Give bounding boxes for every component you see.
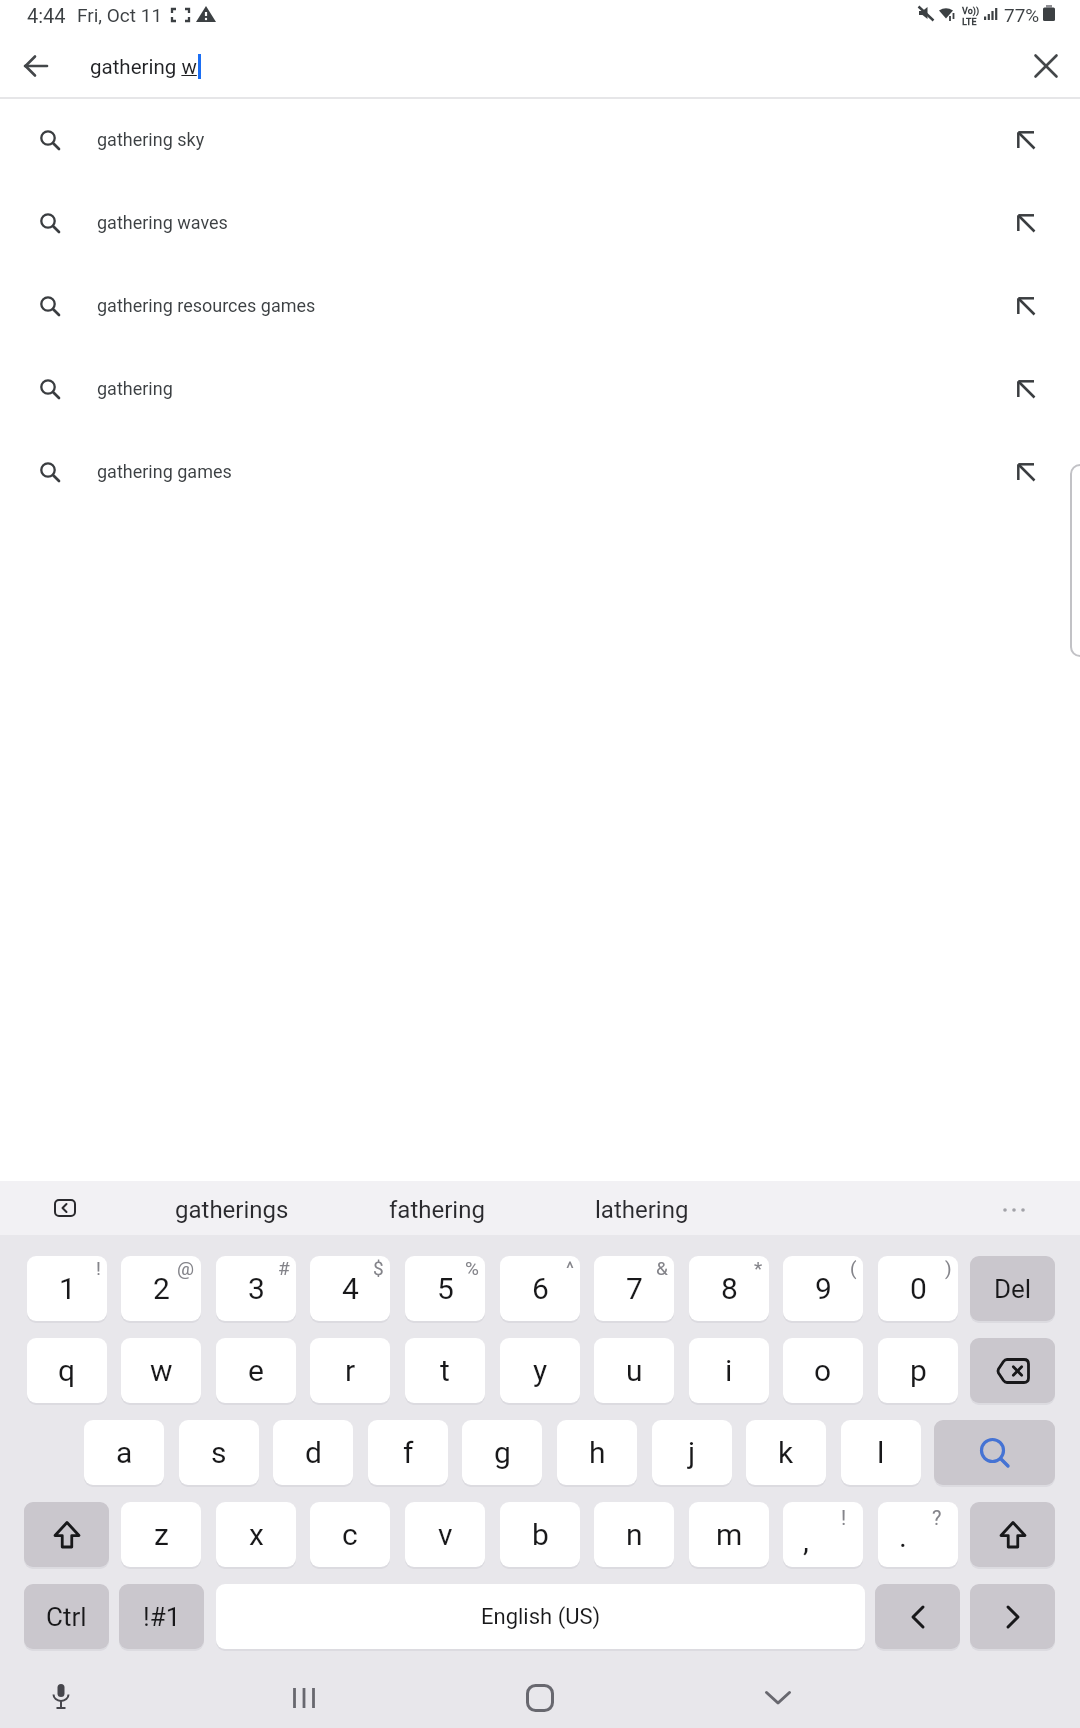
button[interactable] (970, 1502, 1055, 1567)
button[interactable] (875, 1584, 960, 1649)
button[interactable]: Del (970, 1256, 1055, 1321)
staticText: 6 (532, 1271, 549, 1306)
staticText: . (899, 1519, 907, 1554)
button[interactable]: 7 (594, 1256, 674, 1321)
button[interactable]: e (216, 1338, 296, 1403)
button[interactable]: 2 (121, 1256, 201, 1321)
staticText: * (754, 1257, 763, 1279)
staticText: 5 (437, 1271, 454, 1306)
staticText: fathering (389, 1196, 485, 1224)
button[interactable] (934, 1420, 1055, 1485)
staticText: k (778, 1435, 794, 1470)
button[interactable] (1070, 464, 1080, 657)
staticText: y (533, 1353, 548, 1388)
staticText: 9 (815, 1271, 832, 1306)
button[interactable]: 6 (500, 1256, 580, 1321)
button[interactable]: , (783, 1502, 863, 1567)
staticText: LTE (962, 17, 977, 28)
staticText: g (494, 1435, 511, 1470)
button[interactable]: j (652, 1420, 732, 1485)
staticText: lathering (595, 1196, 689, 1224)
button[interactable]: w (121, 1338, 201, 1403)
staticText: ! (96, 1257, 101, 1279)
button[interactable]: Ctrl (24, 1584, 109, 1649)
staticText: ( (850, 1257, 857, 1279)
staticText: gatherings (175, 1196, 289, 1224)
button[interactable]: s (179, 1420, 259, 1485)
button[interactable]: m (689, 1502, 769, 1567)
button[interactable] (518, 1676, 562, 1720)
button[interactable]: gathering resources games (0, 265, 1080, 348)
button[interactable] (13, 43, 59, 89)
button[interactable]: p (878, 1338, 958, 1403)
staticText: 2 (153, 1271, 170, 1306)
button[interactable] (970, 1584, 1055, 1649)
staticText: z (154, 1517, 169, 1552)
button[interactable]: . (878, 1502, 958, 1567)
button[interactable]: gathering sky (0, 99, 1080, 182)
staticText: o (814, 1353, 832, 1388)
button[interactable]: c (310, 1502, 390, 1567)
button[interactable]: fathering (327, 1183, 547, 1237)
staticText: d (305, 1435, 322, 1470)
button[interactable]: 5 (405, 1256, 485, 1321)
staticText: v (438, 1517, 453, 1552)
button[interactable]: x (216, 1502, 296, 1567)
staticText: % (465, 1257, 479, 1279)
staticText: n (626, 1517, 643, 1552)
button[interactable]: n (594, 1502, 674, 1567)
staticText: gathering resources games (97, 295, 316, 316)
button[interactable]: b (500, 1502, 580, 1567)
button[interactable]: y (500, 1338, 580, 1403)
button[interactable]: g (462, 1420, 542, 1485)
button[interactable]: gatherings (122, 1183, 342, 1237)
button[interactable]: gathering waves (0, 182, 1080, 265)
staticText: 0 (910, 1271, 927, 1306)
button[interactable]: l (841, 1420, 921, 1485)
staticText: 3 (248, 1271, 265, 1306)
staticText: English (US) (481, 1604, 601, 1630)
button[interactable]: 8 (689, 1256, 769, 1321)
button[interactable]: 3 (216, 1256, 296, 1321)
button[interactable]: u (594, 1338, 674, 1403)
button[interactable]: English (US) (216, 1584, 865, 1649)
button[interactable]: d (273, 1420, 353, 1485)
button[interactable] (1023, 43, 1069, 89)
button[interactable]: r (310, 1338, 390, 1403)
button[interactable]: v (405, 1502, 485, 1567)
button[interactable] (39, 1676, 83, 1720)
staticText: w (150, 1353, 173, 1388)
button[interactable]: q (27, 1338, 107, 1403)
button[interactable]: 9 (783, 1256, 863, 1321)
staticText: Del (994, 1274, 1032, 1304)
button[interactable]: gathering games (0, 431, 1080, 514)
button[interactable]: o (783, 1338, 863, 1403)
staticText: c (342, 1517, 358, 1552)
button[interactable] (282, 1676, 326, 1720)
staticText: gathering games (97, 461, 232, 482)
button[interactable] (24, 1502, 109, 1567)
button[interactable]: t (405, 1338, 485, 1403)
button[interactable]: i (689, 1338, 769, 1403)
staticText: l (877, 1435, 885, 1470)
button[interactable] (756, 1676, 800, 1720)
button[interactable]: k (746, 1420, 826, 1485)
staticText: 4:44 (27, 4, 66, 27)
button[interactable] (43, 1186, 87, 1230)
button[interactable]: z (121, 1502, 201, 1567)
staticText: 77% (1004, 4, 1040, 26)
button[interactable]: f (368, 1420, 448, 1485)
staticText: Vo)) (962, 6, 980, 17)
button[interactable]: h (557, 1420, 637, 1485)
button[interactable]: 1 (27, 1256, 107, 1321)
staticText: x (249, 1517, 264, 1552)
button[interactable] (970, 1338, 1055, 1403)
button[interactable]: lathering (532, 1183, 752, 1237)
button[interactable]: gathering (0, 348, 1080, 431)
button[interactable]: 0 (878, 1256, 958, 1321)
button[interactable]: 4 (310, 1256, 390, 1321)
button[interactable]: !#1 (119, 1584, 204, 1649)
staticText: & (656, 1257, 668, 1279)
button[interactable]: a (84, 1420, 164, 1485)
staticText: r (345, 1353, 356, 1388)
